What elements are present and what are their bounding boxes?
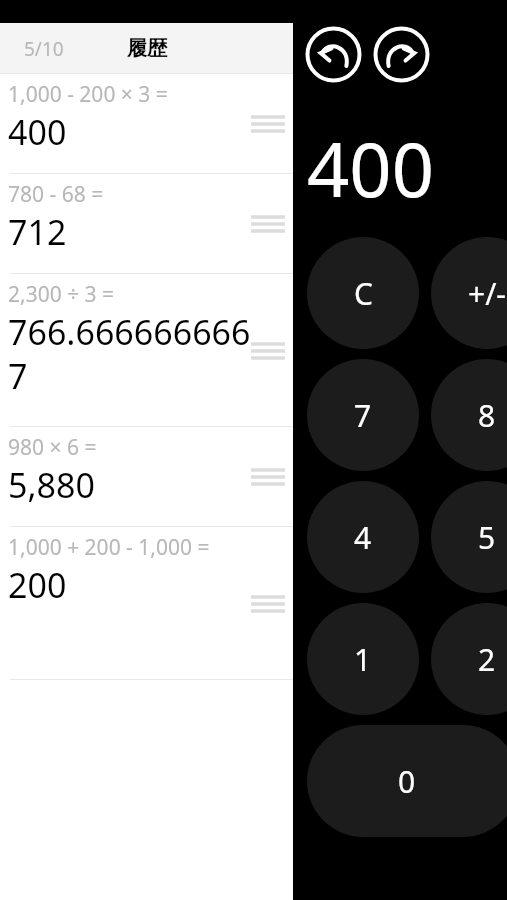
button[interactable]: Reorder xyxy=(251,341,285,361)
staticText: 0 xyxy=(398,761,416,802)
staticText: 400 xyxy=(8,109,67,155)
button[interactable]: Reorder xyxy=(251,594,285,614)
button[interactable]: 980 × 6 = xyxy=(0,427,293,527)
staticText: 2 xyxy=(478,639,496,680)
button[interactable]: +/- xyxy=(431,237,507,349)
button[interactable]: Reorder xyxy=(251,467,285,487)
button[interactable]: Reorder xyxy=(251,114,285,134)
button[interactable]: Reorder xyxy=(251,214,285,234)
button[interactable]: 780 - 68 = xyxy=(0,174,293,274)
button[interactable]: 4 xyxy=(307,481,419,593)
staticText: 8 xyxy=(478,395,496,436)
staticText: 5,880 xyxy=(8,462,95,508)
button[interactable]: C xyxy=(307,237,419,349)
button[interactable]: 7 xyxy=(307,359,419,471)
button[interactable]: Undo xyxy=(305,26,362,83)
staticText: 1 xyxy=(354,639,372,680)
staticText: 400 xyxy=(307,118,507,219)
button[interactable]: Redo xyxy=(373,26,430,83)
staticText: 1,000 - 200 × 3 = xyxy=(8,80,168,109)
button[interactable]: 1,000 - 200 × 3 = xyxy=(0,74,293,174)
staticText: 780 - 68 = xyxy=(8,180,104,209)
staticText: 200 xyxy=(8,562,67,608)
staticText: 5/10 xyxy=(24,36,64,62)
button[interactable]: 2,300 ÷ 3 = xyxy=(0,274,293,427)
staticText: 5 xyxy=(478,517,496,558)
button[interactable]: 0 xyxy=(307,725,507,837)
staticText: 7 xyxy=(354,395,372,436)
button[interactable]: 1,000 + 200 - 1,000 = xyxy=(0,527,293,680)
button[interactable]: 5 xyxy=(431,481,507,593)
staticText: 4 xyxy=(354,517,372,558)
button[interactable]: 8 xyxy=(431,359,507,471)
staticText: +/- xyxy=(468,273,506,314)
staticText: 2,300 ÷ 3 = xyxy=(8,280,115,309)
staticText: 履歴 xyxy=(127,36,167,61)
staticText: 1,000 + 200 - 1,000 = xyxy=(8,533,210,562)
staticText: 766.6666666667 xyxy=(8,309,253,399)
button[interactable]: 1 xyxy=(307,603,419,715)
staticText: 712 xyxy=(8,209,67,255)
staticText: 980 × 6 = xyxy=(8,433,97,462)
button[interactable]: 2 xyxy=(431,603,507,715)
staticText: C xyxy=(354,273,373,314)
